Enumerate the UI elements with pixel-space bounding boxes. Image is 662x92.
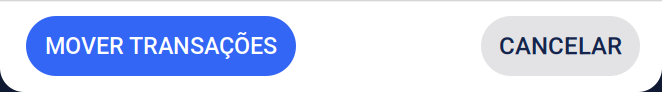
button[interactable]: CANCELAR xyxy=(481,16,640,76)
staticText: MOVER TRANSAÇÕES xyxy=(45,32,277,60)
button[interactable]: MOVER TRANSAÇÕES xyxy=(26,16,296,76)
staticText: CANCELAR xyxy=(499,32,622,60)
